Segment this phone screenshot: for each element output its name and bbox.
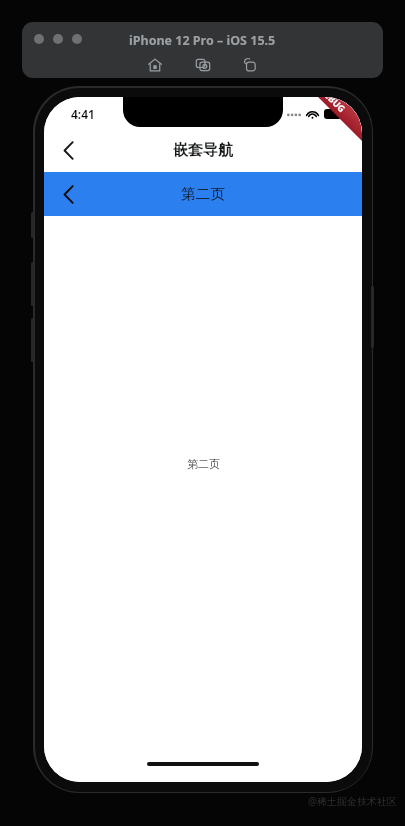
button[interactable]: Rotate (241, 55, 261, 75)
button[interactable]: Back (44, 172, 92, 216)
staticText: @稀土掘金技术社区 (308, 794, 397, 808)
staticText: 嵌套导航 (173, 141, 233, 160)
staticText: 4:41 (71, 106, 95, 122)
button[interactable]: Back (44, 128, 92, 172)
staticText: 第二页 (187, 457, 220, 471)
button[interactable] (34, 34, 44, 44)
button[interactable]: Home (145, 55, 165, 75)
staticText: iPhone 12 Pro – iOS 15.5 (129, 32, 276, 49)
button[interactable]: Screenshot (193, 55, 213, 75)
button[interactable] (53, 34, 63, 44)
button[interactable] (72, 34, 82, 44)
staticText: 第二页 (181, 185, 225, 203)
staticText: DEBUG (318, 97, 348, 114)
